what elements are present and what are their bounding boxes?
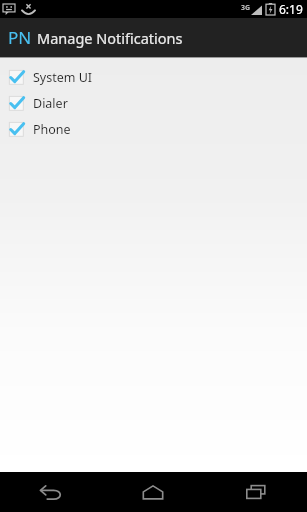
button[interactable]: Recent apps <box>229 472 283 512</box>
button[interactable]: Dialer <box>0 90 307 116</box>
staticText: Dialer <box>33 95 68 112</box>
staticText: System UI <box>33 69 93 86</box>
staticText: 3G <box>241 3 251 13</box>
button[interactable]: Phone <box>0 116 307 142</box>
button[interactable]: System UI <box>0 64 307 90</box>
button[interactable]: Home <box>126 472 180 512</box>
staticText: PN <box>8 26 32 49</box>
staticText: Manage Notifications <box>37 28 183 48</box>
staticText: 6:19 <box>279 1 303 17</box>
staticText: Phone <box>33 121 71 138</box>
button[interactable]: Back <box>24 472 78 512</box>
